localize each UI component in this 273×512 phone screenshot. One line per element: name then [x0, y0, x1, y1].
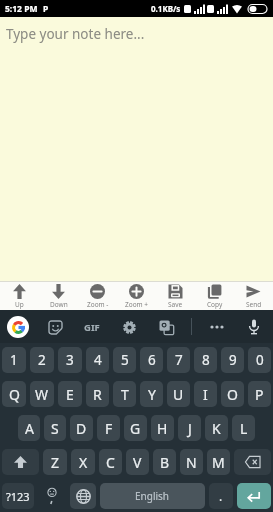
button[interactable]	[7, 316, 29, 338]
button[interactable]: Y	[140, 381, 163, 407]
button[interactable]: L	[232, 415, 255, 441]
staticText: O	[227, 385, 238, 404]
button[interactable]: I	[194, 381, 217, 407]
button[interactable]: Type your note here...	[0, 17, 273, 281]
button[interactable]: W	[30, 381, 54, 407]
button[interactable]: P	[248, 381, 271, 407]
button[interactable]: R	[86, 381, 109, 407]
button[interactable]: Zoom -	[78, 282, 117, 310]
staticText: ?123	[6, 489, 30, 504]
staticText: W	[35, 385, 49, 404]
button[interactable]	[154, 315, 178, 339]
button[interactable]: English	[100, 483, 205, 509]
button[interactable]: M	[207, 449, 230, 475]
button[interactable]: D	[70, 415, 93, 441]
button[interactable]: B	[153, 449, 176, 475]
button[interactable]: Save	[156, 282, 195, 310]
button[interactable]: F	[97, 415, 120, 441]
staticText: E	[66, 385, 74, 404]
staticText: U	[173, 385, 184, 404]
button[interactable]: Q	[2, 381, 26, 407]
staticText: 6	[148, 351, 156, 369]
button[interactable]: H	[151, 415, 174, 441]
button[interactable]: 8	[194, 347, 217, 373]
button[interactable]: 9	[221, 347, 244, 373]
staticText: V	[133, 453, 142, 472]
staticText: Up	[15, 300, 24, 309]
staticText: N	[186, 453, 197, 472]
button[interactable]: 3	[58, 347, 82, 373]
button[interactable]: 6	[140, 347, 163, 373]
staticText: 7	[175, 351, 183, 369]
button[interactable]: A	[18, 415, 40, 441]
staticText: Type your note here...	[6, 25, 145, 43]
staticText: L	[240, 419, 248, 438]
button[interactable]: E	[58, 381, 82, 407]
staticText: English	[135, 489, 170, 503]
button[interactable]: O	[221, 381, 244, 407]
button[interactable]: ?123	[2, 483, 34, 509]
button[interactable]	[205, 315, 229, 339]
staticText: S	[51, 419, 59, 438]
button[interactable]: 5	[113, 347, 136, 373]
staticText: 3	[66, 351, 74, 369]
staticText: G	[130, 419, 141, 438]
button[interactable]	[117, 315, 141, 339]
button[interactable]: Up	[0, 282, 39, 310]
staticText: M	[212, 453, 225, 472]
button[interactable]: V	[126, 449, 149, 475]
staticText: J	[188, 419, 192, 438]
staticText: 1	[10, 351, 18, 369]
button[interactable]: GIF	[80, 315, 104, 339]
staticText: I	[203, 385, 208, 404]
button[interactable]: 2	[30, 347, 54, 373]
button[interactable]: K	[205, 415, 228, 441]
button[interactable]	[242, 315, 266, 339]
staticText: D	[76, 419, 87, 438]
button[interactable]: 0	[248, 347, 271, 373]
button[interactable]: 7	[167, 347, 190, 373]
staticText: 0	[256, 351, 264, 369]
button[interactable]: Copy	[195, 282, 234, 310]
staticText: B	[160, 453, 170, 472]
staticText: H	[157, 419, 168, 438]
staticText: R	[93, 385, 102, 404]
staticText: 2	[38, 351, 46, 369]
button[interactable]	[38, 483, 66, 509]
button[interactable]: Zoom +	[117, 282, 156, 310]
button[interactable]	[234, 449, 271, 475]
button[interactable]: C	[99, 449, 122, 475]
staticText: .	[219, 488, 223, 504]
button[interactable]: N	[180, 449, 203, 475]
button[interactable]: 4	[86, 347, 109, 373]
button[interactable]: G	[124, 415, 147, 441]
staticText: Z	[51, 453, 60, 472]
staticText: 5	[121, 351, 129, 369]
staticText: Save	[168, 300, 183, 309]
button[interactable]	[2, 449, 39, 475]
button[interactable]	[70, 483, 96, 509]
staticText: Zoom -	[87, 300, 109, 309]
button[interactable]: Down	[39, 282, 78, 310]
button[interactable]: Z	[43, 449, 67, 475]
staticText: Send	[246, 300, 262, 309]
staticText: Y	[148, 385, 156, 404]
button[interactable]	[237, 483, 271, 509]
button[interactable]: 1	[2, 347, 26, 373]
staticText: 4	[94, 351, 102, 369]
button[interactable]: U	[167, 381, 190, 407]
staticText: X	[79, 453, 88, 472]
staticText: 9	[229, 351, 237, 369]
button[interactable]: X	[71, 449, 95, 475]
button[interactable]: J	[178, 415, 201, 441]
button[interactable]: .	[209, 483, 233, 509]
staticText: F	[105, 419, 113, 438]
button[interactable]	[43, 315, 67, 339]
staticText: 5:12 PM	[5, 3, 38, 15]
button[interactable]: S	[44, 415, 66, 441]
staticText: K	[212, 419, 221, 438]
staticText: P	[43, 3, 49, 15]
staticText: 8	[202, 351, 210, 369]
button[interactable]: Send	[234, 282, 273, 310]
button[interactable]: T	[113, 381, 136, 407]
